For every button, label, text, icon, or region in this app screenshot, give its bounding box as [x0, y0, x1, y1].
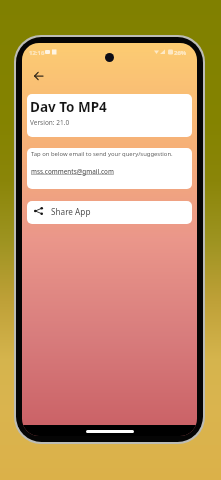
- staticText: Share App: [51, 206, 91, 217]
- button[interactable]: mss.comments@gmail.com: [31, 167, 114, 176]
- button[interactable]: Share App: [27, 201, 192, 221]
- staticText: Version: 21.0: [30, 118, 70, 127]
- staticText: 12:16: [29, 49, 45, 57]
- staticText: Tap on below email to send your query/su…: [31, 150, 173, 158]
- staticText: Dav To MP4: [30, 98, 107, 116]
- button[interactable]: Back: [25, 65, 51, 91]
- staticText: 26%: [174, 49, 187, 57]
